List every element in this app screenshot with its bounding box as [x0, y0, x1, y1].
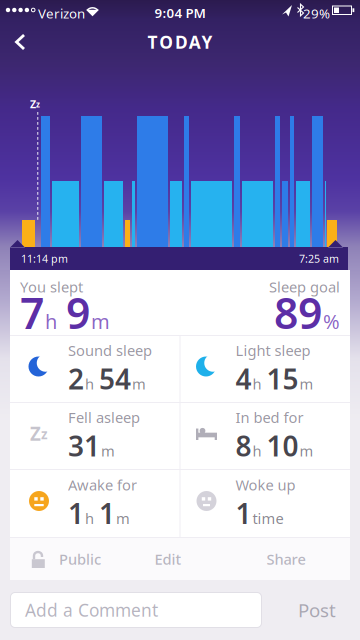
staticText: z	[36, 99, 40, 110]
staticText: In bed for	[235, 408, 303, 427]
staticText: 54	[99, 360, 131, 397]
staticText: Post	[298, 598, 336, 622]
staticText: 8	[235, 427, 251, 464]
staticText: z	[41, 425, 48, 443]
staticText: %	[323, 308, 340, 334]
staticText: Fell asleep	[68, 408, 140, 427]
staticText: h	[85, 509, 94, 528]
button[interactable]: Back	[0, 20, 44, 64]
staticText: 10	[266, 427, 298, 464]
button[interactable]: Post	[282, 592, 352, 628]
staticText: 11:14 pm	[21, 251, 68, 266]
staticText: 89	[274, 284, 322, 341]
staticText: m	[116, 509, 130, 528]
staticText: Woke up	[235, 475, 295, 495]
staticText: You slept	[20, 277, 83, 296]
button[interactable]: Public	[10, 538, 101, 580]
staticText: 1	[68, 495, 84, 532]
staticText: 4	[235, 360, 251, 397]
staticText: m	[101, 441, 115, 461]
staticText: Sound sleep	[68, 341, 152, 360]
staticText: h	[45, 308, 57, 334]
staticText: 2	[68, 360, 84, 397]
staticText: m	[91, 308, 110, 334]
staticText: TODAY	[147, 30, 213, 53]
staticText: m	[299, 374, 313, 394]
staticText: h	[252, 374, 261, 394]
staticText: Sleep goal	[269, 277, 340, 296]
staticText: Z	[30, 97, 36, 111]
staticText: 1	[99, 495, 115, 532]
staticText: 15	[266, 360, 298, 397]
staticText: Edit	[154, 549, 181, 569]
staticText: Verizon	[38, 4, 85, 22]
staticText: 29%	[303, 4, 330, 22]
staticText: m	[299, 441, 313, 461]
staticText: Public	[59, 549, 101, 569]
staticText: Add a Comment	[25, 598, 158, 621]
button[interactable]: Add a Comment	[10, 592, 262, 628]
staticText: Awake for	[68, 475, 137, 495]
staticText: time	[252, 509, 283, 528]
button[interactable]: Share	[246, 538, 326, 580]
staticText: 9	[66, 284, 90, 341]
staticText: 7	[20, 284, 44, 341]
staticText: h	[85, 374, 94, 394]
button[interactable]: Edit	[128, 538, 208, 580]
staticText: h	[252, 441, 261, 461]
staticText: Share	[266, 549, 305, 569]
staticText: Z	[30, 421, 41, 446]
staticText: 31	[68, 427, 100, 464]
staticText: 7:25 am	[299, 251, 339, 266]
staticText: 9:04 PM	[154, 4, 205, 22]
staticText: Light sleep	[235, 341, 310, 360]
staticText: m	[132, 374, 146, 394]
staticText: 1	[235, 495, 251, 532]
